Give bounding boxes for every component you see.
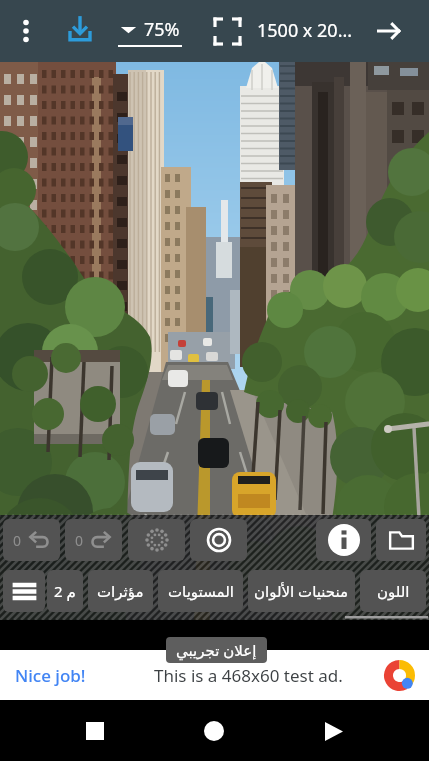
button[interactable]: 75%	[118, 17, 182, 47]
button[interactable]	[3, 570, 45, 612]
button[interactable]: مؤثرات	[88, 570, 153, 612]
staticText: المستويات	[168, 583, 234, 600]
staticText: م 2	[54, 581, 76, 601]
button[interactable]	[309, 707, 357, 755]
button[interactable]	[190, 519, 247, 561]
staticText: 0	[75, 531, 84, 550]
button[interactable]	[214, 18, 241, 45]
button[interactable]: اللون	[360, 570, 426, 612]
button[interactable]	[375, 17, 403, 45]
staticText: This is a 468x60 test ad.	[154, 664, 343, 687]
staticText: مؤثرات	[97, 583, 144, 600]
staticText: منحنيات الألوان	[254, 581, 349, 601]
button[interactable]: 0	[3, 519, 60, 561]
button[interactable]: منحنيات الألوان	[248, 570, 355, 612]
button[interactable]	[376, 519, 426, 561]
button[interactable]: م 2	[47, 570, 83, 612]
button[interactable]: المستويات	[158, 570, 243, 612]
button[interactable]	[2, 7, 50, 55]
button[interactable]	[58, 9, 102, 53]
button[interactable]: Nice job!	[0, 650, 429, 700]
button[interactable]: 0	[65, 519, 122, 561]
button[interactable]	[316, 519, 371, 561]
staticText: Nice job!	[15, 664, 86, 687]
staticText: اللون	[377, 583, 410, 600]
staticText: 75%	[144, 17, 180, 42]
button[interactable]	[128, 519, 185, 561]
staticText: 1500 x 20...	[257, 18, 353, 43]
button[interactable]	[71, 707, 119, 755]
staticText: 0	[13, 531, 22, 550]
staticText: إعلان تجريبي	[176, 640, 257, 660]
button[interactable]	[190, 707, 238, 755]
